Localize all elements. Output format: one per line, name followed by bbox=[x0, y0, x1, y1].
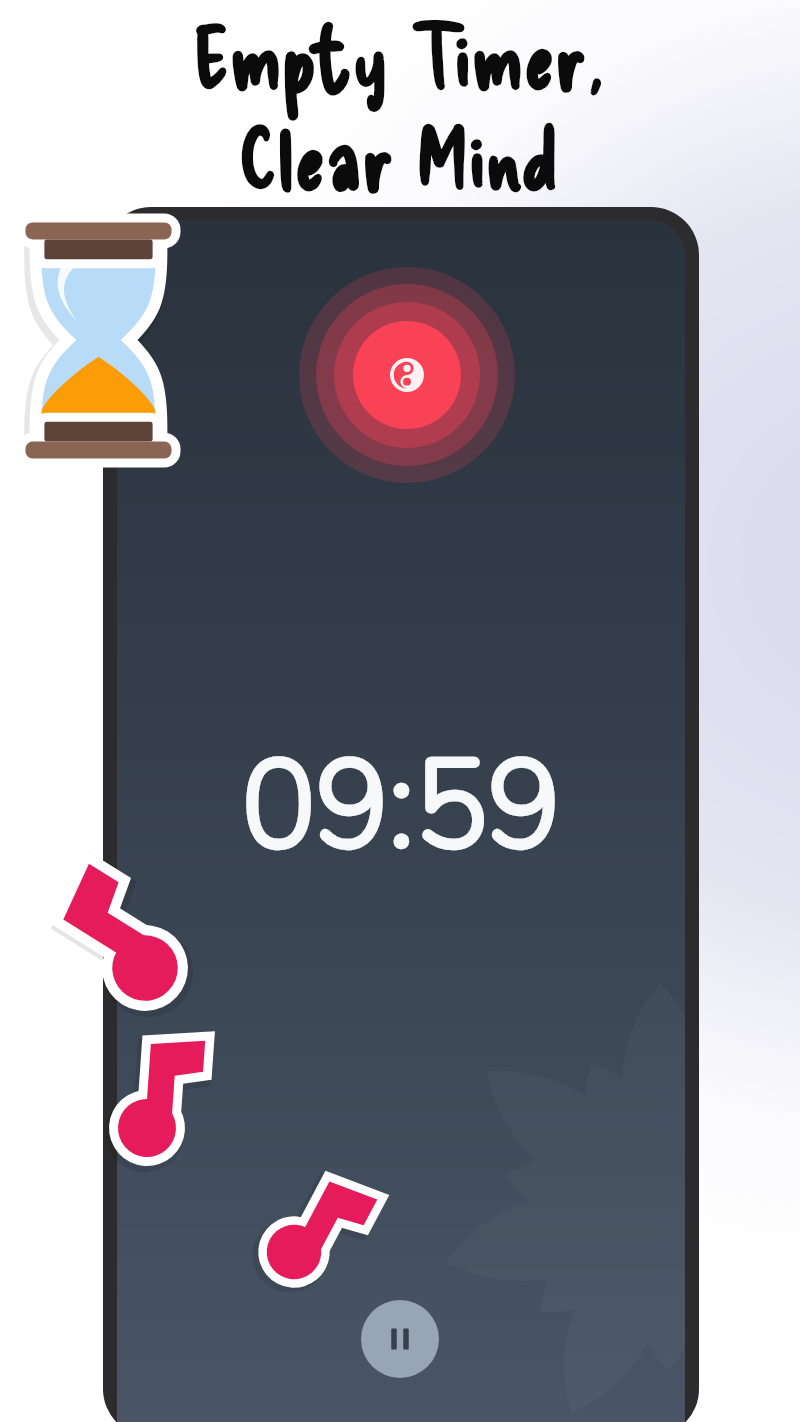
staticText: 09:59 bbox=[242, 723, 561, 853]
staticText: Clear Mind bbox=[240, 106, 560, 207]
staticText: Empty Timer, bbox=[194, 5, 606, 106]
staticText: Empty Timer, bbox=[194, 5, 606, 106]
button[interactable]: Pause bbox=[361, 1300, 439, 1378]
staticText: 09:59 bbox=[242, 723, 561, 853]
staticText: Clear Mind bbox=[240, 106, 560, 207]
button[interactable]: Start meditation bbox=[295, 263, 519, 487]
